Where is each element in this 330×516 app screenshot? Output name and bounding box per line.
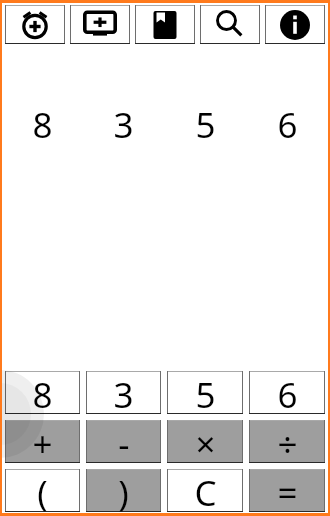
staticText: 3 bbox=[113, 101, 134, 149]
staticText: ( bbox=[37, 469, 48, 512]
staticText: ) bbox=[118, 469, 129, 512]
staticText: 5 bbox=[195, 371, 216, 414]
staticText: ÷ bbox=[277, 420, 298, 463]
staticText: 3 bbox=[113, 371, 134, 414]
button[interactable]: Search bbox=[200, 5, 260, 44]
button[interactable]: Info bbox=[265, 5, 325, 44]
button[interactable]: C bbox=[167, 469, 243, 512]
button[interactable]: ( bbox=[5, 469, 80, 512]
staticText: 8 bbox=[32, 101, 53, 149]
staticText: = bbox=[277, 469, 298, 512]
staticText: 6 bbox=[277, 371, 298, 414]
button[interactable]: Add alarm bbox=[5, 5, 65, 44]
staticText: 6 bbox=[277, 101, 298, 149]
staticText: + bbox=[32, 420, 53, 463]
button[interactable]: 6 bbox=[249, 371, 325, 414]
button[interactable]: Bookmarks bbox=[135, 5, 195, 44]
button[interactable]: ) bbox=[86, 469, 161, 512]
button[interactable]: 5 bbox=[167, 371, 243, 414]
staticText: 5 bbox=[195, 101, 216, 149]
button[interactable]: + bbox=[5, 420, 80, 463]
staticText: - bbox=[118, 420, 130, 463]
staticText: C bbox=[194, 469, 217, 512]
staticText: 8 bbox=[32, 371, 53, 414]
button[interactable]: - bbox=[86, 420, 161, 463]
button[interactable]: ÷ bbox=[249, 420, 325, 463]
button[interactable]: 3 bbox=[86, 371, 161, 414]
button[interactable]: × bbox=[167, 420, 243, 463]
staticText: × bbox=[195, 420, 216, 463]
button[interactable]: = bbox=[249, 469, 325, 512]
button[interactable]: 8 bbox=[5, 371, 80, 414]
button[interactable]: Add to home screen bbox=[70, 5, 130, 44]
